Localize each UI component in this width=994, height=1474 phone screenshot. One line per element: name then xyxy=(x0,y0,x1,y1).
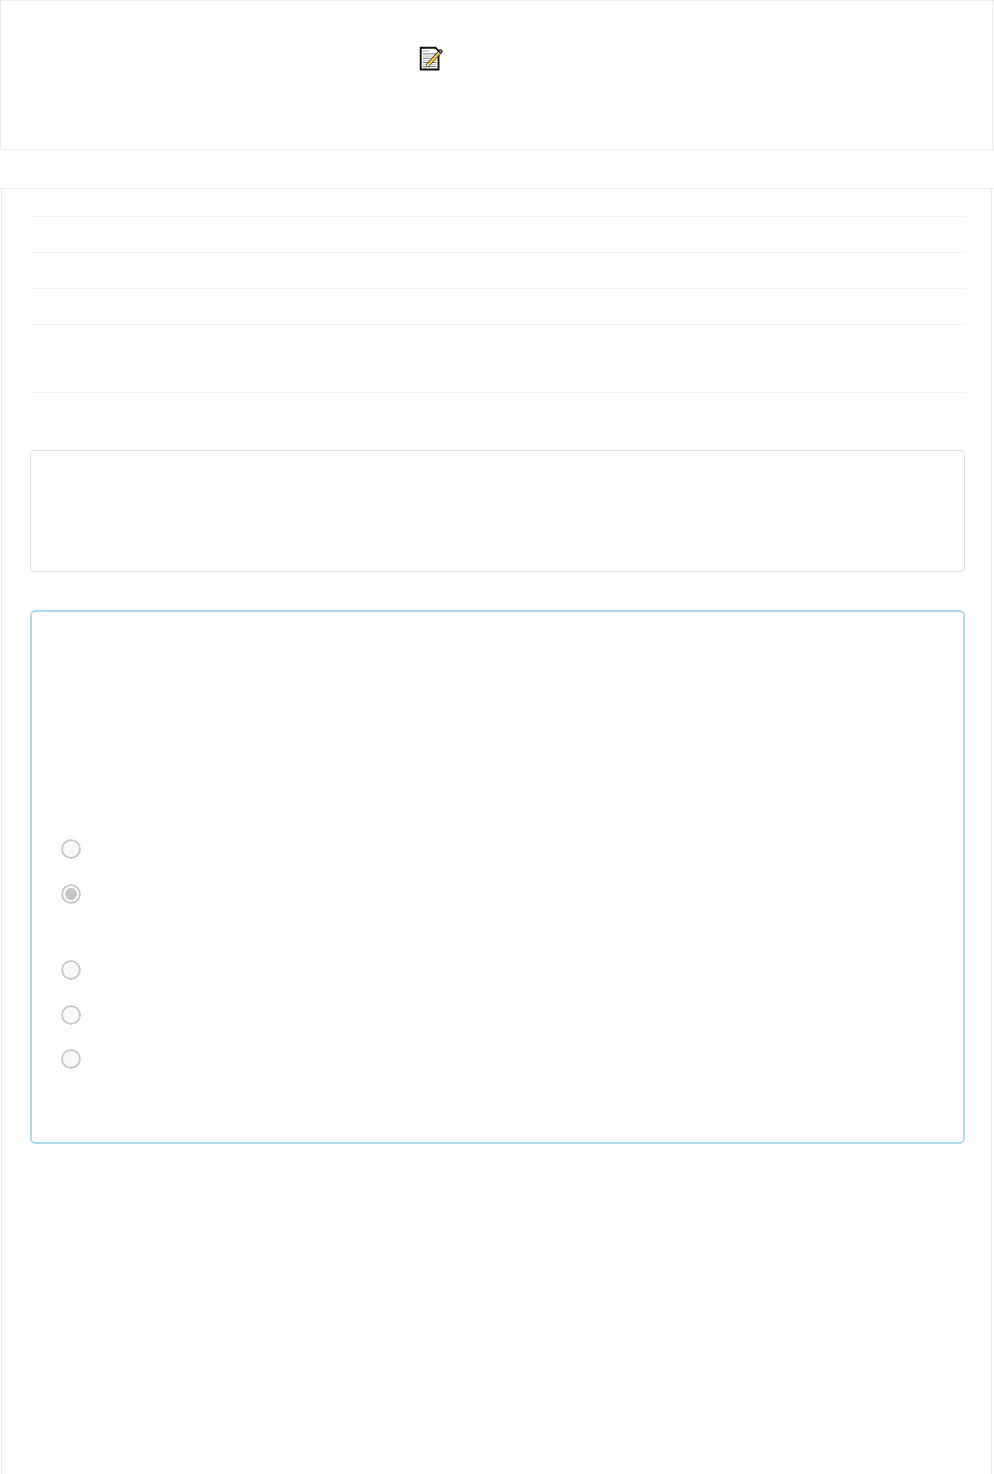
button[interactable]: Form header xyxy=(0,0,994,150)
button[interactable]: Question card xyxy=(30,450,965,572)
button[interactable]: Row 1 xyxy=(30,188,966,217)
button[interactable]: Choice 4 xyxy=(30,1005,965,1025)
other: Memo xyxy=(419,46,443,70)
button[interactable]: Choice 5 xyxy=(30,1049,965,1069)
button[interactable]: Choice 3 xyxy=(30,960,965,980)
button[interactable]: Choice 2 xyxy=(30,884,965,904)
button[interactable]: Choice 1 xyxy=(30,839,965,859)
